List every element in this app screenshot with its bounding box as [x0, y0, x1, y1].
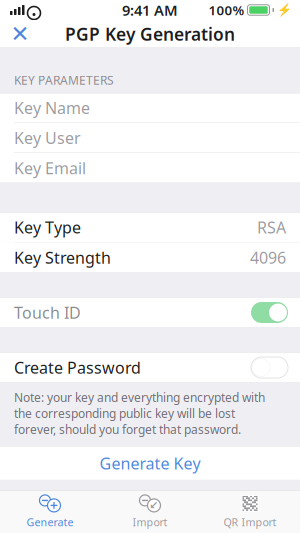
button[interactable]: Key Type [0, 212, 300, 242]
button[interactable]: Touch ID [0, 297, 300, 327]
button[interactable]: Create Password [0, 352, 300, 382]
staticText: Key Email [14, 157, 86, 179]
staticText: 9:41 AM [122, 0, 178, 20]
staticText: Key Strength [14, 247, 111, 268]
staticText: Generate Key [99, 453, 200, 474]
staticText: Create Password [14, 357, 141, 378]
staticText: Key User [14, 127, 81, 148]
staticText: 4096 [250, 247, 286, 268]
staticText: 100% [208, 1, 244, 19]
button[interactable]: ↙ [100, 490, 200, 532]
staticText: Key Type [14, 217, 81, 238]
staticText: Generate [26, 515, 73, 529]
button[interactable]: Generate Key [0, 446, 300, 480]
staticText: KEY PARAMETERS [14, 72, 114, 88]
staticText: ⚡ [277, 3, 292, 17]
staticText: ↙ [149, 499, 158, 511]
staticText: QR Import [223, 515, 276, 529]
button[interactable]: Generate [0, 490, 100, 532]
staticText: RSA [257, 217, 286, 238]
button[interactable]: Close [0, 20, 40, 48]
staticText: Key Name [14, 97, 90, 118]
staticText: Import [132, 515, 167, 529]
staticText: Touch ID [14, 302, 81, 323]
staticText: ✕ [10, 21, 29, 47]
button[interactable]: QR Import [200, 490, 300, 532]
button[interactable]: Key Strength [0, 242, 300, 272]
staticText: PGP Key Generation [65, 22, 235, 45]
staticText: Note: your key and everything encrypted … [14, 389, 265, 437]
